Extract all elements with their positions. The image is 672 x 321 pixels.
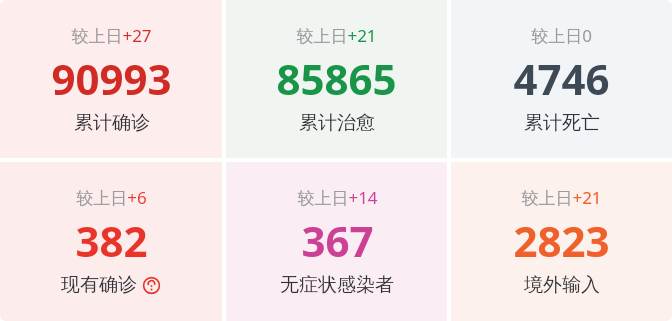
staticText: 境外输入 bbox=[524, 273, 600, 297]
button[interactable]: 较上日0 bbox=[451, 0, 672, 158]
staticText: 较上日+21 bbox=[521, 186, 602, 209]
staticText: 累计死亡 bbox=[524, 111, 600, 135]
button[interactable]: 较上日+21 bbox=[451, 162, 672, 321]
staticText: 无症状感染者 bbox=[280, 273, 394, 297]
staticText: 较上日+27 bbox=[71, 24, 152, 47]
staticText: 较上日+14 bbox=[297, 186, 378, 209]
staticText: 382 bbox=[75, 212, 148, 269]
button[interactable]: 较上日+27 bbox=[0, 0, 222, 158]
staticText: 90993 bbox=[51, 50, 172, 107]
staticText: 85865 bbox=[276, 50, 397, 107]
button[interactable]: 较上日+6 bbox=[0, 162, 222, 321]
staticText: 较上日+6 bbox=[76, 186, 147, 209]
button[interactable]: 现有确诊说明 bbox=[142, 276, 161, 295]
staticText: 367 bbox=[301, 212, 374, 269]
button[interactable]: 较上日+14 bbox=[226, 162, 447, 321]
staticText: 4746 bbox=[513, 50, 610, 107]
staticText: 2823 bbox=[513, 212, 610, 269]
staticText: 较上日+21 bbox=[296, 24, 377, 47]
button[interactable]: 较上日+21 bbox=[226, 0, 447, 158]
staticText: 现有确诊 bbox=[61, 273, 137, 297]
staticText: 累计确诊 bbox=[74, 111, 150, 135]
staticText: 累计治愈 bbox=[299, 111, 375, 135]
staticText: 较上日0 bbox=[531, 24, 592, 47]
